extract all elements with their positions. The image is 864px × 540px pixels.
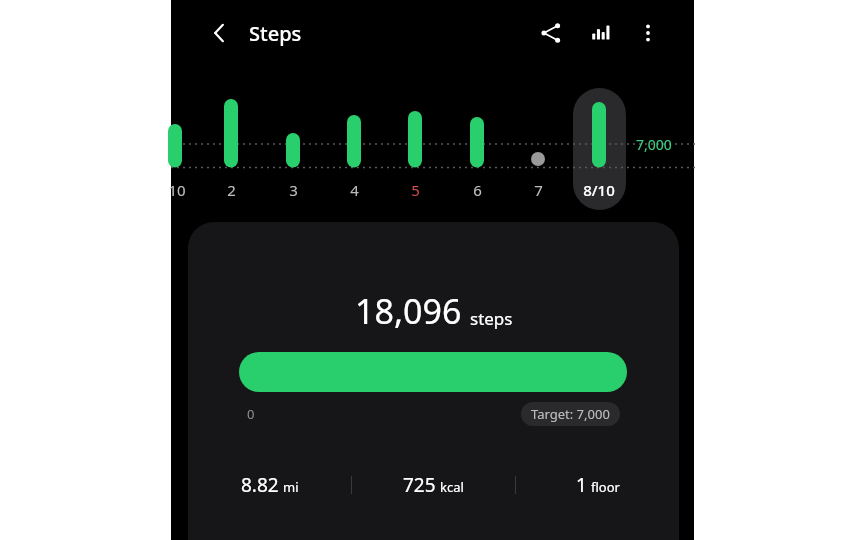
button[interactable]: [573, 88, 626, 210]
button[interactable]: 725: [352, 472, 515, 498]
staticText: 7: [534, 180, 543, 200]
staticText: 3: [289, 180, 298, 200]
staticText: 8.82: [241, 472, 279, 498]
staticText: 4: [350, 180, 359, 200]
staticText: 7,000: [636, 135, 672, 154]
button[interactable]: More options: [627, 12, 669, 54]
staticText: Steps: [249, 20, 302, 47]
staticText: 725: [403, 472, 436, 498]
staticText: 18,096: [355, 288, 462, 334]
staticText: Target: 7,000: [531, 405, 610, 423]
button[interactable]: [239, 352, 627, 392]
button[interactable]: 1: [516, 472, 679, 498]
staticText: kcal: [440, 478, 464, 496]
button[interactable]: Back: [199, 12, 241, 54]
staticText: 1: [576, 472, 587, 498]
staticText: mi: [283, 478, 299, 496]
button[interactable]: Share: [530, 12, 572, 54]
staticText: 8/10: [583, 180, 615, 200]
button[interactable]: 8.82: [188, 472, 351, 498]
staticText: 10: [168, 180, 186, 200]
staticText: steps: [470, 307, 513, 330]
staticText: 2: [227, 180, 236, 200]
staticText: 6: [473, 180, 482, 200]
button[interactable]: Chart: [580, 12, 622, 54]
staticText: 5: [411, 180, 420, 200]
staticText: 0: [247, 405, 255, 423]
staticText: floor: [591, 478, 620, 496]
